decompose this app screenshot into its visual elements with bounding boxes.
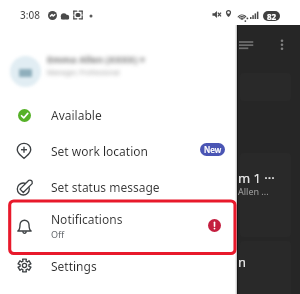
other: More options	[276, 39, 288, 51]
button[interactable]: Available	[0, 97, 237, 133]
staticText: New	[204, 144, 222, 155]
other: Notifications are off	[208, 219, 221, 232]
staticText: Set status message	[51, 179, 160, 195]
button[interactable]: New	[200, 143, 225, 156]
staticText: Settings	[51, 258, 97, 274]
staticText: n	[238, 253, 247, 271]
staticText: Available	[51, 107, 102, 123]
staticText: Off	[51, 228, 65, 240]
staticText: Manager, Professional	[47, 68, 120, 78]
button[interactable]: Notifications	[0, 205, 237, 245]
staticText: Emma Allen (XXXX) ▾	[47, 53, 145, 66]
button[interactable]: Set work location	[0, 133, 237, 169]
staticText: Set work location	[51, 143, 148, 159]
staticText: Notifications	[51, 211, 123, 227]
other: Open navigation menu	[239, 39, 254, 54]
button[interactable]: Settings	[0, 247, 237, 284]
staticText: 82	[267, 11, 277, 21]
button[interactable]: Set status message	[0, 169, 237, 205]
staticText: m 1 ···	[238, 169, 275, 187]
staticText: 3:08	[20, 8, 40, 22]
staticText: Allen ...	[238, 185, 269, 197]
